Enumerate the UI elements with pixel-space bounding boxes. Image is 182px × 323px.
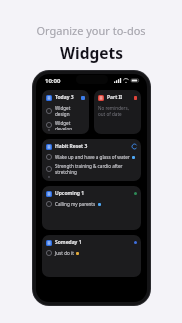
button[interactable]: Upcoming 1 — [42, 186, 141, 230]
button[interactable]: Widget design — [46, 105, 85, 117]
staticText: Widgets — [60, 42, 123, 63]
staticText: No reminders, out of date — [98, 105, 129, 117]
staticText: Organize your to-dos — [36, 23, 146, 38]
staticText: Strength training & cardio after stretch… — [55, 163, 137, 175]
staticText: Someday 1 — [55, 239, 82, 246]
staticText: Just do it — [55, 250, 74, 256]
staticText: Wake up and have a glass of water — [55, 154, 130, 160]
staticText: Upcoming 1 — [55, 190, 85, 197]
staticText: Widget design — [55, 105, 85, 117]
button[interactable]: Strength training & cardio after stretch… — [46, 163, 137, 175]
button[interactable]: Widget develop — [46, 120, 85, 130]
button[interactable]: Someday 1 — [42, 235, 141, 277]
button[interactable]: Part II — [94, 90, 141, 134]
staticText: 10:00 — [45, 77, 61, 85]
button[interactable]: Wake up and have a glass of water — [46, 154, 137, 160]
staticText: Habit Reset 3 — [55, 143, 88, 150]
button[interactable]: Just do it — [46, 250, 137, 256]
staticText: Calling my parents — [55, 201, 96, 207]
button[interactable]: Habit Reset 3 — [42, 139, 141, 181]
staticText: Today 3 — [55, 94, 74, 101]
other: Refresh — [132, 144, 137, 149]
button[interactable]: Calling my parents — [46, 201, 137, 207]
staticText: Widget develop — [55, 120, 85, 130]
button[interactable]: Today 3 — [42, 90, 89, 134]
staticText: Part II — [107, 94, 123, 101]
